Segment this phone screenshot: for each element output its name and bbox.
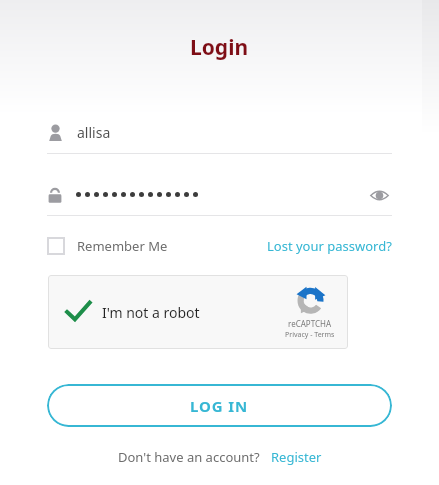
staticText: I'm not a robot — [102, 303, 200, 322]
button[interactable]: allisa — [47, 119, 392, 154]
staticText: Don't have an account? — [118, 448, 260, 466]
staticText: Lost your password? — [267, 237, 392, 255]
button[interactable]: Show password — [366, 182, 392, 208]
button[interactable]: Lost your password? — [267, 237, 392, 255]
button[interactable]: Remember Me — [47, 237, 168, 255]
button[interactable]: LOG IN — [47, 384, 392, 427]
button[interactable]: Register — [271, 448, 322, 466]
staticText: LOG IN — [190, 396, 249, 416]
staticText: Register — [271, 448, 322, 466]
staticText: allisa — [77, 123, 111, 142]
staticText: reCAPTCHA — [288, 318, 332, 329]
staticText: Login — [190, 33, 249, 62]
button[interactable]: I'm not a robot — [48, 275, 348, 349]
staticText: Remember Me — [77, 237, 168, 255]
staticText: Privacy - Terms — [285, 330, 335, 340]
